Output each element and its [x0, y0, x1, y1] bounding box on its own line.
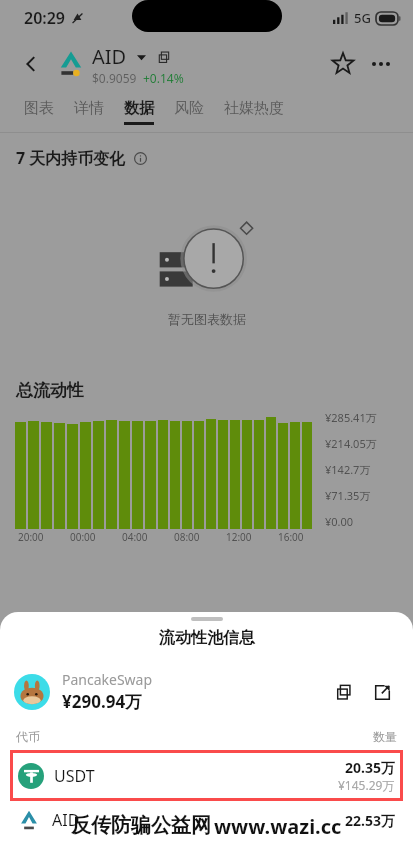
button[interactable]: More options — [363, 46, 399, 82]
staticText: ¥214.05万 — [325, 436, 377, 451]
staticText: 20.35万 — [345, 758, 395, 777]
staticText: 20:29 — [24, 7, 66, 29]
button[interactable]: Copy — [155, 48, 173, 66]
button[interactable]: Info — [132, 150, 148, 166]
staticText: 22.53万 — [345, 811, 395, 830]
button[interactable]: USDT — [10, 750, 403, 801]
button[interactable]: 详情 — [64, 92, 114, 132]
button[interactable]: PancakeSwap — [0, 670, 413, 713]
staticText: 7 天内持币变化 — [16, 147, 126, 169]
staticText: 图表 — [24, 99, 54, 118]
button[interactable]: 社媒热度 — [214, 92, 294, 132]
staticText: 代币 — [16, 729, 40, 744]
staticText: AID — [92, 43, 127, 70]
button[interactable]: Copy address — [327, 675, 361, 709]
staticText: 反传防骗公益网 — [71, 813, 211, 837]
button[interactable]: Open externally — [365, 675, 399, 709]
button[interactable]: AID — [0, 809, 413, 831]
staticText: 04:00 — [122, 530, 148, 544]
staticText: ¥142.7万 — [325, 462, 371, 477]
staticText: ¥0.00 — [325, 514, 354, 529]
staticText: ¥285.41万 — [325, 410, 377, 425]
staticText: 社媒热度 — [224, 99, 284, 118]
staticText: www.wazi.cc — [214, 813, 342, 837]
button[interactable]: 图表 — [14, 92, 64, 132]
staticText: +0.14% — [143, 70, 184, 86]
staticText: ¥145.29万 — [338, 777, 395, 793]
staticText: 风险 — [174, 99, 204, 118]
staticText: 数据 — [124, 99, 154, 118]
button[interactable]: Back — [14, 47, 48, 81]
staticText: ¥71.35万 — [325, 488, 371, 503]
button[interactable]: More tokens — [134, 50, 148, 64]
staticText: PancakeSwap — [62, 670, 153, 689]
staticText: 详情 — [74, 99, 104, 118]
staticText: 12:00 — [226, 530, 252, 544]
staticText: AID — [52, 809, 80, 831]
staticText: 暂无图表数据 — [168, 311, 246, 327]
staticText: 流动性池信息 — [159, 628, 255, 648]
staticText: 16:00 — [278, 530, 304, 544]
staticText: ¥290.94万 — [62, 690, 143, 713]
staticText: USDT — [54, 765, 95, 787]
button[interactable]: 数据 — [114, 92, 164, 132]
staticText: 总流动性 — [16, 380, 84, 401]
staticText: 数量 — [373, 729, 397, 744]
button[interactable]: Favorite — [323, 44, 363, 84]
staticText: 5G — [354, 9, 371, 27]
staticText: 20:00 — [18, 530, 44, 544]
staticText: $0.9059 — [92, 70, 137, 86]
staticText: 08:00 — [174, 530, 200, 544]
staticText: 00:00 — [70, 530, 96, 544]
button[interactable]: 风险 — [164, 92, 214, 132]
